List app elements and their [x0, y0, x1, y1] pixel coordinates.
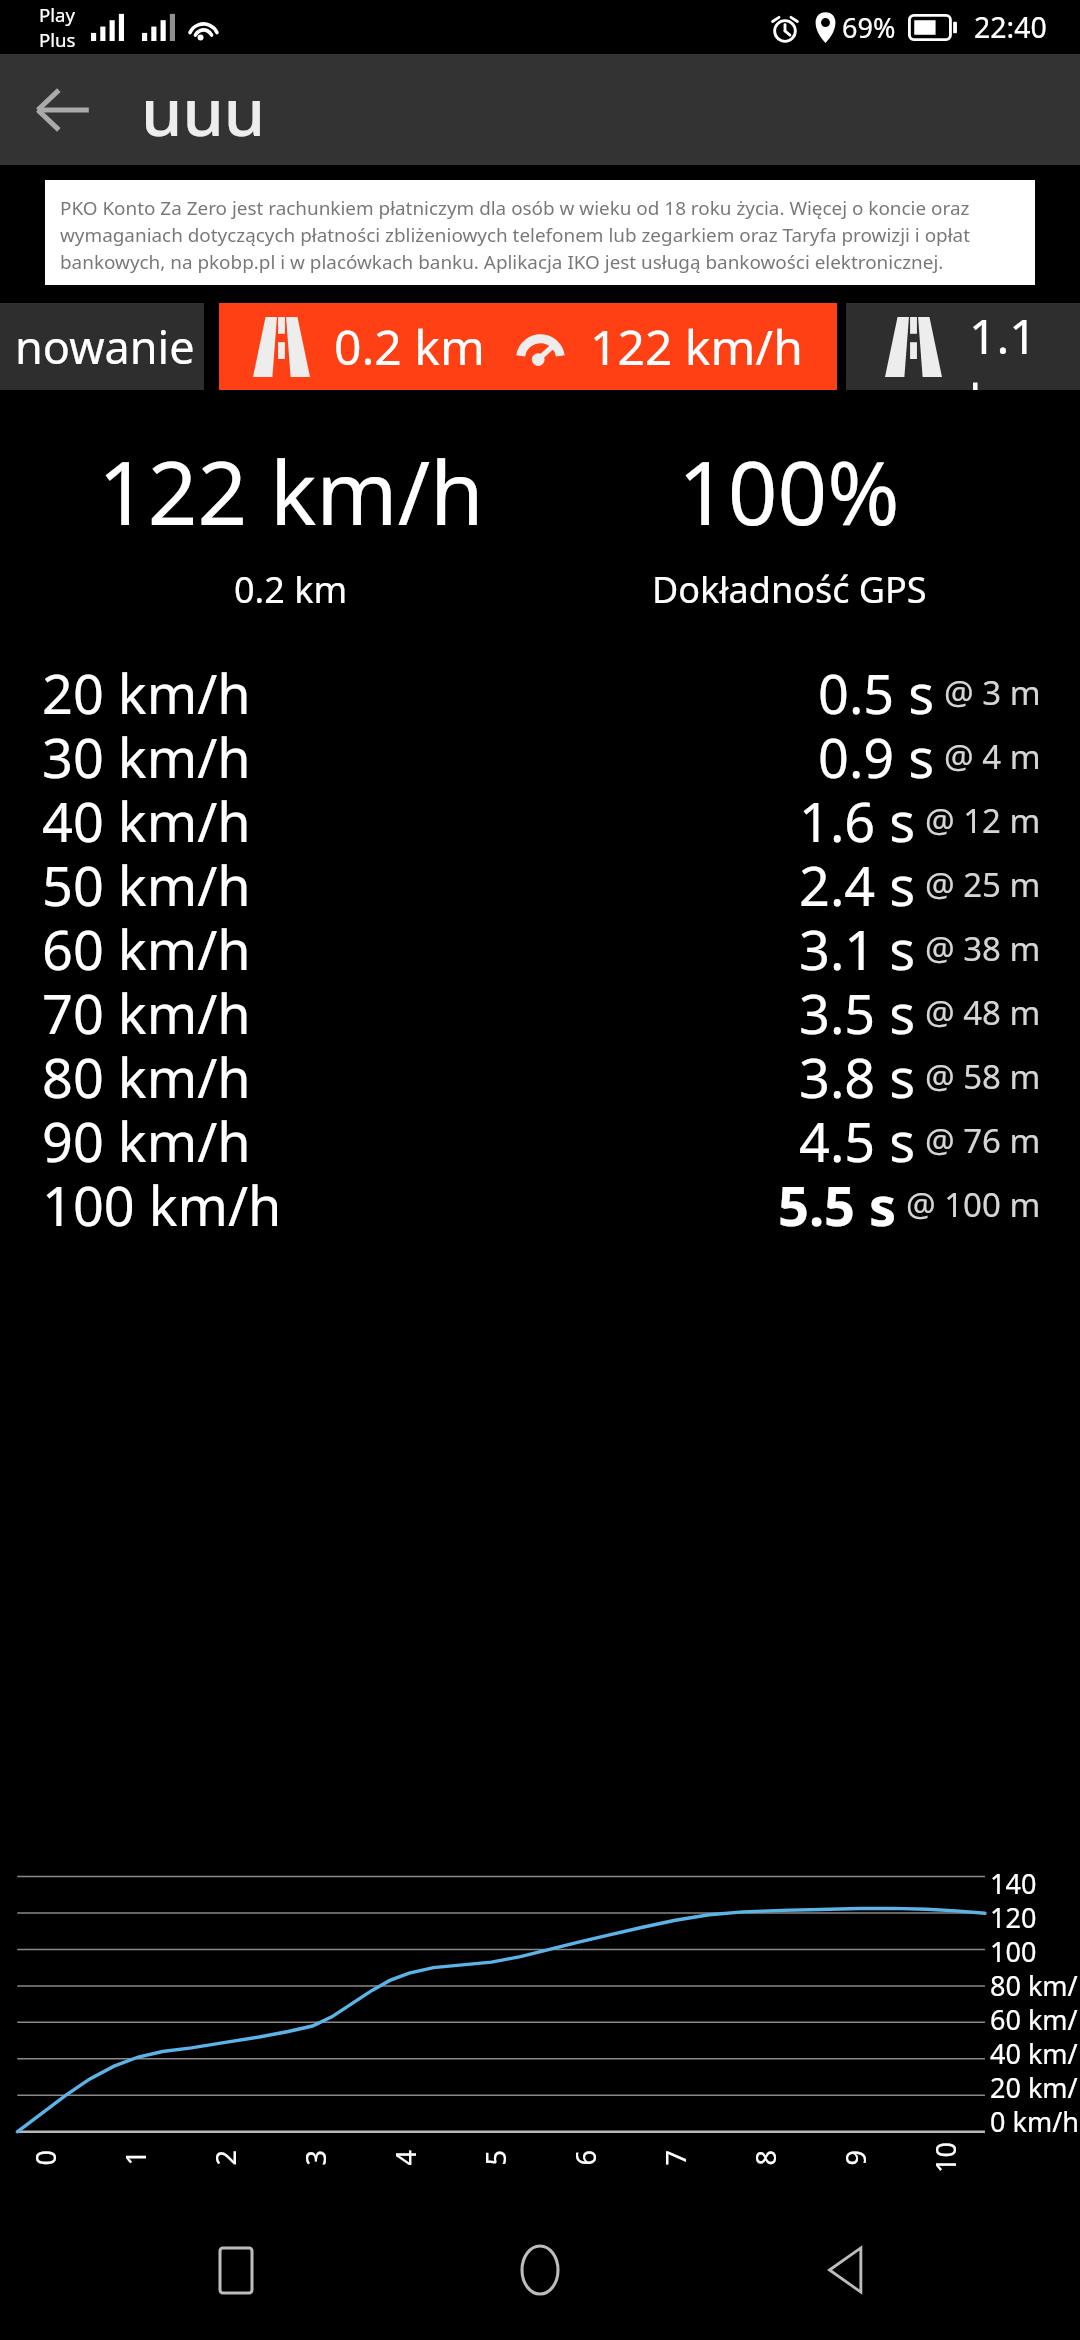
staticText: uuu: [141, 65, 266, 155]
button[interactable]: 1.1 km: [846, 303, 1080, 390]
button[interactable]: PKO Konto Za Zero jest rachunkiem płatni…: [45, 180, 1035, 285]
staticText: 100 km/h: [990, 1933, 1080, 1967]
staticText: 100%: [678, 432, 900, 550]
button[interactable]: 80 km/h: [42, 1040, 1041, 1104]
button[interactable]: 0.2 km: [219, 303, 837, 390]
staticText: 1.1 km: [969, 303, 1080, 390]
staticText: @ 100 m: [906, 1182, 1041, 1227]
staticText: @ 76 m: [925, 1118, 1041, 1163]
staticText: 80 km/h: [42, 1040, 799, 1104]
staticText: Plus: [39, 27, 76, 52]
button[interactable]: nowanie: [0, 303, 204, 390]
staticText: 8: [746, 2149, 783, 2165]
staticText: 10: [927, 2142, 964, 2173]
staticText: 3: [296, 2149, 333, 2165]
staticText: 4.5 s: [799, 1104, 916, 1168]
button[interactable]: Back: [776, 2201, 914, 2339]
staticText: 3.1 s: [799, 912, 916, 976]
staticText: 60 km/h: [42, 912, 799, 976]
button[interactable]: 50 km/h: [42, 848, 1041, 912]
staticText: 122 km/h: [590, 314, 803, 379]
staticText: 0 km/h: [990, 2103, 1079, 2137]
staticText: @ 4 m: [944, 734, 1041, 779]
button[interactable]: 100 km/h: [42, 1168, 1041, 1232]
staticText: 4: [386, 2149, 423, 2165]
staticText: 22:40: [974, 8, 1047, 47]
staticText: @ 3 m: [944, 670, 1041, 715]
staticText: 0: [26, 2149, 63, 2165]
staticText: 30 km/h: [42, 720, 818, 784]
staticText: 120 km/h: [990, 1899, 1080, 1933]
staticText: 7: [656, 2149, 693, 2165]
staticText: @ 25 m: [925, 862, 1041, 907]
staticText: 9: [836, 2149, 873, 2165]
button[interactable]: 70 km/h: [42, 976, 1041, 1040]
staticText: nowanie: [15, 316, 195, 377]
staticText: 50 km/h: [42, 848, 799, 912]
button[interactable]: 60 km/h: [42, 912, 1041, 976]
staticText: 69%: [842, 9, 896, 46]
staticText: 0.5 s: [818, 656, 935, 720]
staticText: 100 km/h: [42, 1168, 778, 1232]
staticText: Play: [39, 2, 75, 27]
staticText: 0.9 s: [818, 720, 935, 784]
staticText: 2: [206, 2149, 243, 2165]
staticText: PKO Konto Za Zero jest rachunkiem płatni…: [60, 195, 1017, 275]
button[interactable]: 20 km/h: [42, 656, 1041, 720]
staticText: 60 km/h: [990, 2001, 1080, 2035]
staticText: @ 38 m: [925, 926, 1041, 971]
button[interactable]: 90 km/h: [42, 1104, 1041, 1168]
staticText: 40 km/h: [42, 784, 799, 848]
staticText: 0.2 km: [334, 314, 485, 379]
staticText: @ 58 m: [925, 1054, 1041, 1099]
staticText: 80 km/h: [990, 1967, 1080, 2001]
staticText: 5.5 s: [778, 1168, 897, 1232]
button[interactable]: Home: [471, 2201, 609, 2339]
staticText: 0.2 km: [234, 565, 348, 614]
staticText: 1.6 s: [799, 784, 916, 848]
staticText: 20 km/h: [42, 656, 818, 720]
staticText: 40 km/h: [990, 2035, 1080, 2069]
staticText: Dokładność GPS: [652, 565, 927, 614]
staticText: 70 km/h: [42, 976, 799, 1040]
staticText: 2.4 s: [799, 848, 916, 912]
button[interactable]: Recent apps: [167, 2201, 305, 2339]
staticText: 3.5 s: [799, 976, 916, 1040]
staticText: 5: [476, 2149, 513, 2165]
staticText: @ 48 m: [925, 990, 1041, 1035]
staticText: 90 km/h: [42, 1104, 799, 1168]
staticText: 3.8 s: [799, 1040, 916, 1104]
button[interactable]: Back: [15, 62, 111, 158]
staticText: 122 km/h: [98, 432, 484, 550]
staticText: @ 12 m: [925, 798, 1041, 843]
staticText: 6: [566, 2149, 603, 2165]
button[interactable]: 30 km/h: [42, 720, 1041, 784]
staticText: 1: [116, 2149, 153, 2165]
staticText: 140 km/h: [990, 1865, 1080, 1899]
button[interactable]: 40 km/h: [42, 784, 1041, 848]
staticText: 20 km/h: [990, 2069, 1080, 2103]
